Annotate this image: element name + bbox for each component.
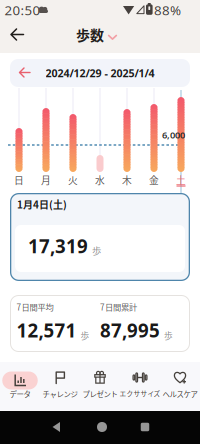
staticText: 木: [122, 173, 132, 187]
staticText: 土: [176, 173, 186, 187]
staticText: 12,571: [16, 318, 76, 343]
button[interactable]: データ: [0, 362, 40, 411]
staticText: 7日間平均: [16, 301, 53, 313]
staticText: 87,995: [100, 318, 160, 343]
staticText: 6,000: [162, 129, 185, 141]
staticText: 金: [149, 173, 159, 187]
staticText: データ: [9, 388, 30, 399]
staticText: 水: [95, 173, 105, 187]
staticText: 2024/12/29 - 2025/1/4: [45, 66, 154, 80]
staticText: 20:50: [4, 1, 40, 19]
button[interactable]: エクササイズ: [120, 362, 160, 411]
button[interactable]: プレゼント: [80, 362, 120, 411]
button[interactable]: Back: [7, 27, 27, 41]
staticText: 歩: [164, 329, 173, 342]
staticText: 月: [41, 173, 51, 187]
button[interactable]: Recents: [141, 423, 149, 431]
staticText: 1月4日(土): [17, 197, 67, 211]
staticText: プレゼント: [82, 388, 117, 399]
staticText: 歩: [80, 329, 89, 342]
staticText: 88%: [154, 1, 181, 19]
staticText: ヘルスケア: [162, 388, 197, 399]
button[interactable]: Home: [97, 422, 107, 432]
button[interactable]: ヘルスケア: [160, 362, 200, 411]
staticText: エクササイズ: [119, 388, 160, 398]
staticText: 日: [14, 173, 24, 187]
button[interactable]: チャレンジ: [40, 362, 80, 411]
staticText: 7日間累計: [100, 301, 137, 313]
button[interactable]: Back: [52, 421, 61, 432]
button[interactable]: 前の週: [18, 67, 32, 79]
staticText: 歩: [92, 244, 101, 257]
staticText: 17,319: [28, 233, 88, 258]
staticText: チャレンジ: [42, 388, 77, 399]
staticText: 火: [68, 173, 78, 187]
button[interactable]: 歩数: [76, 24, 117, 45]
staticText: 歩数: [76, 24, 104, 45]
